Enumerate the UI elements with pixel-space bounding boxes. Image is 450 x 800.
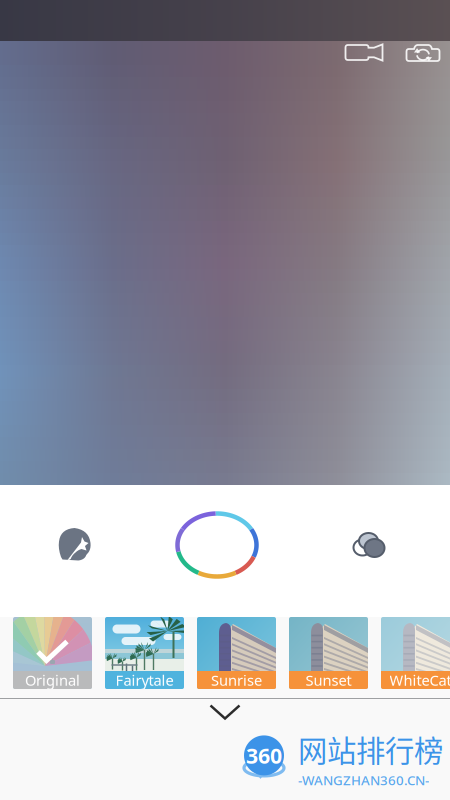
button[interactable]: Beauty xyxy=(0,485,142,617)
button[interactable]: Sunset xyxy=(289,617,368,689)
button[interactable]: Sunrise xyxy=(197,617,276,689)
staticText: Sunset xyxy=(305,670,351,690)
staticText: Fairytale xyxy=(115,670,173,690)
staticText: -WANGZHAN360.CN- xyxy=(298,771,429,789)
button[interactable]: Original xyxy=(13,617,92,689)
button[interactable]: WhiteCat xyxy=(381,617,450,689)
staticText: Original xyxy=(25,670,80,690)
button[interactable]: Record video xyxy=(344,43,385,62)
button[interactable]: Fairytale xyxy=(105,617,184,689)
button[interactable]: Collapse filters xyxy=(180,699,270,725)
staticText: 网站排行榜 xyxy=(298,728,443,770)
staticText: 360 xyxy=(246,741,282,769)
button[interactable]: Filters xyxy=(308,485,450,617)
button[interactable]: Switch camera xyxy=(405,43,441,63)
button[interactable]: Take photo xyxy=(150,485,300,617)
staticText: WhiteCat xyxy=(389,670,450,690)
staticText: Sunrise xyxy=(211,670,262,690)
